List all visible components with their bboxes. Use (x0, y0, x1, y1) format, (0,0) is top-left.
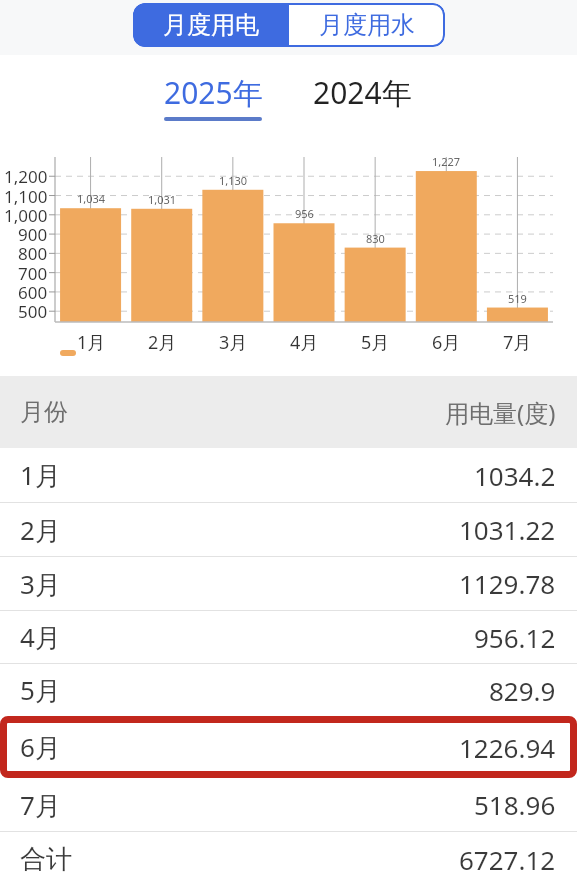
staticText: 1,100 (4, 185, 48, 208)
button[interactable]: 4月 (0, 611, 577, 664)
staticText: 6727.12 (459, 842, 556, 877)
button[interactable]: 2024年 (287, 72, 437, 113)
staticText: 月份 (20, 397, 68, 427)
staticText: 月度用电 (163, 10, 259, 40)
staticText: 用电量(度) (445, 396, 556, 429)
staticText: 5月 (20, 672, 61, 708)
staticText: 3月 (219, 330, 248, 355)
staticText: 7月 (20, 787, 61, 823)
staticText: 2025年 (164, 72, 263, 113)
staticText: 6月 (20, 729, 61, 765)
staticText: 900 (18, 223, 48, 246)
staticText: 1226.94 (459, 730, 556, 765)
staticText: 600 (18, 281, 48, 304)
staticText: 1,227 (432, 154, 461, 169)
staticText: 519 (508, 291, 527, 306)
staticText: 1月 (77, 330, 106, 355)
button[interactable]: 月度用水 (289, 3, 445, 47)
staticText: 800 (18, 242, 48, 265)
staticText: 700 (18, 262, 48, 285)
button[interactable]: 5月 (0, 664, 577, 716)
staticText: 5月 (361, 330, 390, 355)
staticText: 6月 (432, 330, 461, 355)
staticText: 合计 (20, 843, 72, 876)
staticText: 829.9 (489, 673, 556, 708)
staticText: 1031.22 (459, 512, 556, 547)
button[interactable]: 3月 (0, 557, 577, 611)
staticText: 7月 (503, 330, 532, 355)
button[interactable]: 6月 (0, 716, 577, 778)
button[interactable]: 月度用电 (133, 3, 289, 47)
staticText: 1,031 (148, 192, 177, 207)
staticText: 4月 (290, 330, 319, 355)
staticText: 2月 (20, 512, 61, 548)
staticText: 1,130 (219, 173, 248, 188)
staticText: 830 (366, 231, 385, 246)
button[interactable]: 合计 (0, 832, 577, 886)
staticText: 2024年 (313, 72, 412, 113)
staticText: 1,200 (4, 165, 48, 188)
staticText: 956.12 (474, 620, 556, 655)
staticText: 4月 (20, 619, 61, 655)
staticText: 2月 (148, 330, 177, 355)
staticText: 1,000 (4, 204, 48, 227)
button[interactable]: 7月 (0, 778, 577, 832)
staticText: 1,034 (77, 191, 106, 206)
staticText: 518.96 (474, 787, 556, 822)
staticText: 1129.78 (459, 566, 556, 601)
button[interactable]: 2月 (0, 503, 577, 557)
staticText: 3月 (20, 566, 61, 602)
staticText: 1月 (20, 457, 61, 493)
staticText: 500 (18, 300, 48, 323)
staticText: 956 (295, 206, 314, 221)
staticText: 1034.2 (474, 458, 556, 493)
staticText: 月度用水 (319, 10, 415, 40)
button[interactable]: 2025年 (138, 72, 288, 121)
button[interactable]: 1月 (0, 448, 577, 503)
